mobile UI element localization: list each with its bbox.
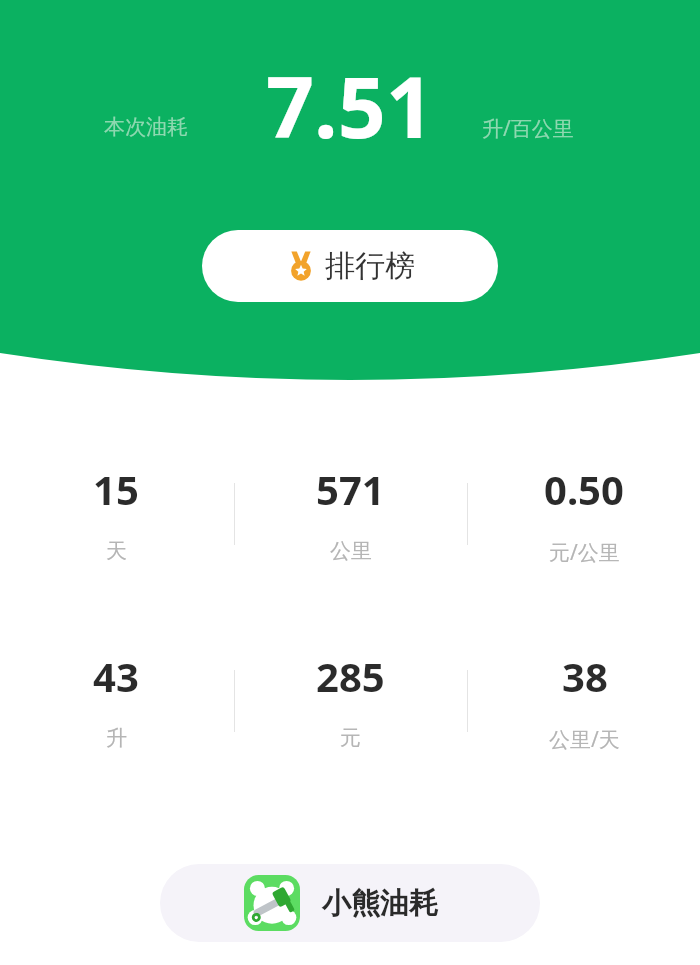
staticText: 升/百公里 xyxy=(482,114,574,143)
staticText: 升 xyxy=(106,725,127,751)
staticText: 7.51 xyxy=(266,48,434,162)
button[interactable]: 排行榜 xyxy=(202,230,498,302)
staticText: 571 xyxy=(316,462,385,516)
button[interactable]: 15 xyxy=(26,462,206,572)
staticText: 排行榜 xyxy=(325,247,415,285)
staticText: 小熊油耗 xyxy=(322,885,438,922)
button[interactable]: 43 xyxy=(26,649,206,759)
staticText: 43 xyxy=(93,649,139,703)
staticText: 本次油耗 xyxy=(104,114,188,140)
staticText: 15 xyxy=(93,462,139,516)
staticText: 公里/天 xyxy=(549,725,620,754)
button[interactable]: 571 xyxy=(260,462,440,572)
button[interactable]: 38 xyxy=(494,649,674,759)
staticText: 公里 xyxy=(330,538,372,564)
button[interactable]: 285 xyxy=(260,649,440,759)
staticText: 38 xyxy=(562,649,608,703)
staticText: 天 xyxy=(106,538,127,564)
staticText: 0.50 xyxy=(544,462,624,516)
staticText: 元 xyxy=(340,725,361,751)
button[interactable]: 小熊油耗 app icon xyxy=(160,864,540,942)
staticText: 285 xyxy=(316,649,385,703)
staticText: 元/公里 xyxy=(549,538,620,567)
button[interactable]: 0.50 xyxy=(494,462,674,572)
other: 小熊油耗 app icon xyxy=(244,875,300,931)
